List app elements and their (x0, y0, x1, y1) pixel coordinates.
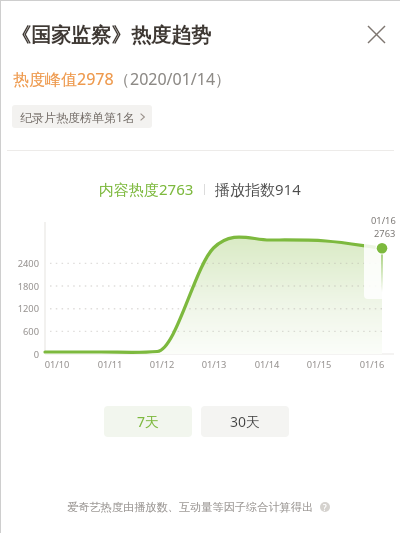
staticText: 爱奇艺热度由播放数、互动量等因子综合计算得出 (67, 500, 314, 514)
staticText: 播放指数914 (215, 179, 301, 199)
staticText: 600 (1, 325, 39, 338)
staticText: 01/16 (371, 214, 396, 227)
staticText: 0 (1, 348, 39, 361)
staticText: 30天 (230, 412, 261, 431)
staticText: 01/10 (37, 358, 77, 371)
staticText: 01/15 (299, 358, 339, 371)
staticText: 热度峰值2978 (13, 68, 114, 90)
button[interactable]: 7天 (104, 406, 192, 437)
button[interactable]: 纪录片热度榜单第1名 (12, 105, 152, 128)
button[interactable]: Close (359, 17, 393, 51)
staticText: 1200 (1, 302, 39, 315)
staticText: 01/13 (194, 358, 234, 371)
staticText: 01/14 (247, 358, 287, 371)
staticText: 01/11 (90, 358, 130, 371)
staticText: 01/16 (352, 358, 392, 371)
staticText: （2020/01/14） (114, 68, 232, 90)
staticText: 01/12 (142, 358, 182, 371)
staticText: 《国家监察》热度趋势 (11, 23, 211, 48)
staticText: 2400 (1, 257, 39, 270)
button[interactable]: Help (320, 502, 330, 512)
staticText: 2763 (374, 227, 396, 240)
staticText: 纪录片热度榜单第1名 (20, 109, 135, 125)
button[interactable]: 30天 (201, 406, 289, 437)
staticText: 内容热度2763 (99, 179, 194, 199)
staticText: 1800 (1, 280, 39, 293)
staticText: 7天 (137, 412, 160, 431)
staticText: ? (323, 502, 327, 512)
